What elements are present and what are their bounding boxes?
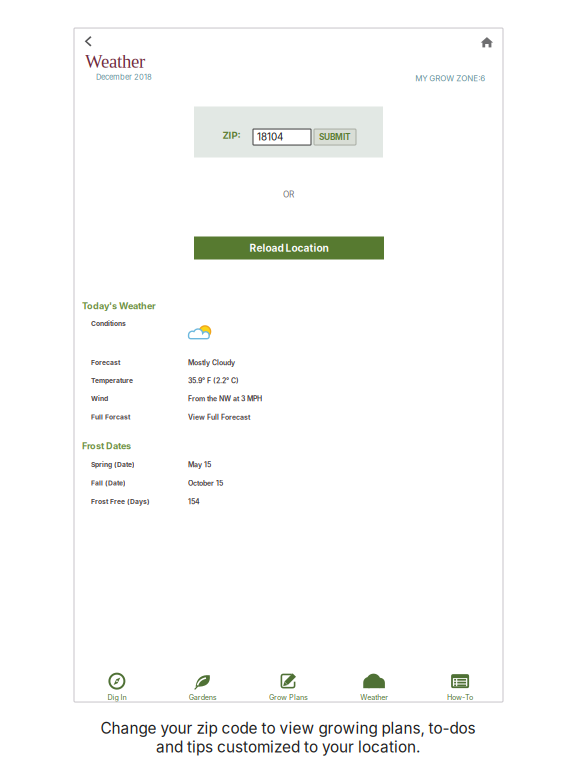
staticText: Frost Dates (82, 440, 131, 451)
staticText: MY GROW ZONE:6 (415, 73, 485, 83)
staticText: Temperature (91, 377, 133, 385)
button[interactable]: Reload Location (194, 236, 384, 259)
staticText: OR (283, 189, 294, 199)
staticText: May 15 (188, 460, 211, 469)
button[interactable]: SUBMIT (314, 129, 356, 145)
staticText: 154 (188, 497, 200, 506)
staticText: Gardens (189, 693, 217, 702)
staticText: 35.9° F (2.2° C) (188, 376, 239, 385)
staticText: ZIP: (222, 129, 240, 141)
button[interactable]: MY GROW ZONE:6 (412, 70, 488, 86)
staticText: and tips customized to your location. (156, 738, 420, 756)
button[interactable]: How-To (417, 664, 503, 710)
staticText: Fall (Date) (91, 479, 126, 487)
staticText: Conditions (91, 319, 126, 328)
button[interactable]: Grow Plans (246, 664, 331, 710)
staticText: December 2018 (96, 72, 152, 82)
staticText: How-To (447, 693, 473, 702)
button[interactable]: Weather (331, 664, 417, 710)
staticText: From the NW at 3 MPH (188, 394, 262, 403)
staticText: Grow Plans (269, 693, 308, 702)
staticText: View Full Forecast (188, 413, 250, 421)
staticText: Forecast (91, 359, 120, 367)
staticText: 18104 (257, 131, 283, 143)
staticText: Frost Free (Days) (91, 498, 150, 506)
staticText: Weather (85, 51, 145, 72)
button[interactable]: Dig In (74, 664, 160, 710)
button[interactable]: Back (81, 32, 96, 51)
staticText: Change your zip code to view growing pla… (100, 719, 475, 738)
staticText: Mostly Cloudy (188, 358, 235, 367)
staticText: Wind (91, 395, 108, 403)
button[interactable]: Home (476, 33, 497, 52)
button[interactable]: Gardens (160, 664, 246, 710)
staticText: Spring (Date) (91, 461, 135, 469)
staticText: Weather (360, 693, 388, 702)
staticText: SUBMIT (319, 132, 351, 142)
staticText: Today's Weather (82, 300, 156, 311)
staticText: Dig In (107, 693, 126, 702)
staticText: Full Forcast (91, 413, 130, 421)
staticText: October 15 (188, 479, 223, 487)
staticText: Reload Location (249, 242, 328, 254)
